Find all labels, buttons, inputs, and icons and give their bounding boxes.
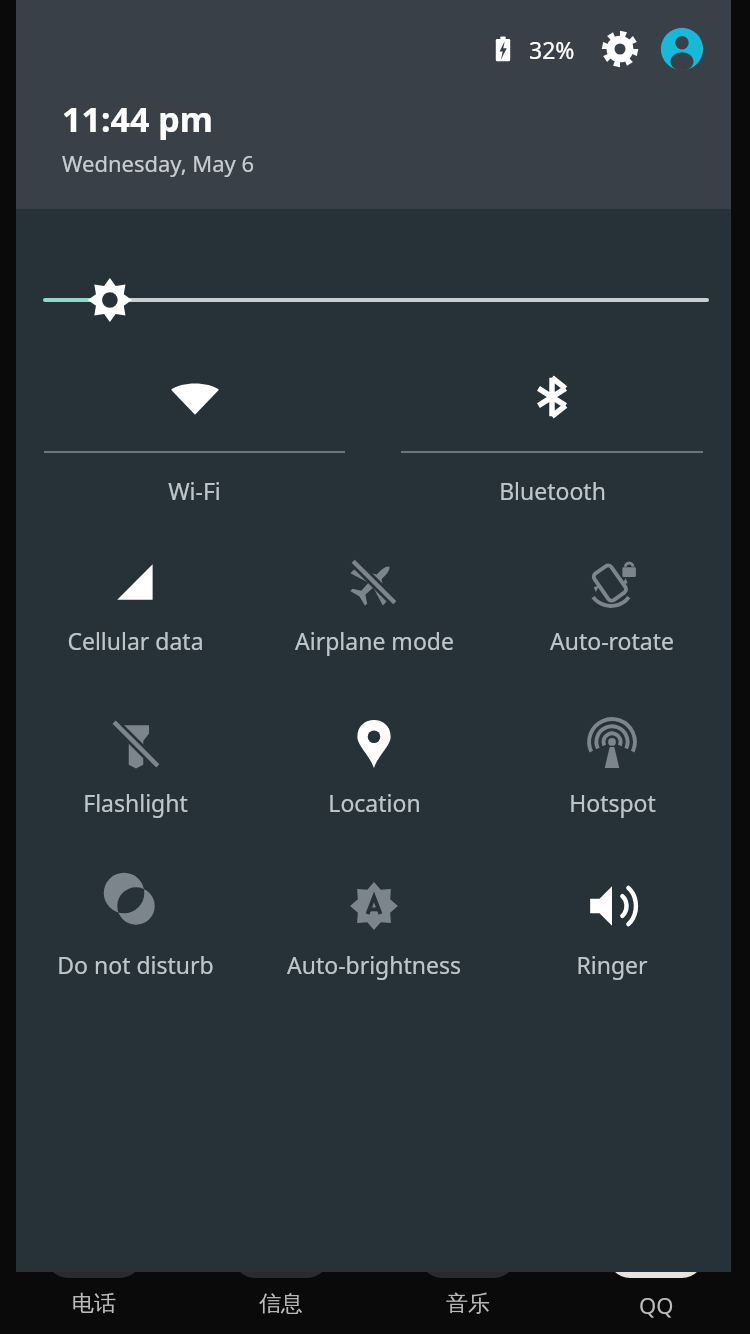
staticText: Ringer	[576, 949, 648, 980]
staticText: QQ	[639, 1290, 674, 1320]
button[interactable]: Hotspot	[493, 713, 731, 818]
other: Battery charging	[485, 31, 521, 67]
staticText: 电话	[72, 1290, 116, 1318]
staticText: Airplane mode	[295, 625, 454, 656]
button[interactable]: Settings	[597, 26, 643, 72]
button[interactable]: Do not disturb	[16, 875, 255, 980]
staticText: Location	[328, 787, 421, 818]
button[interactable]: Flashlight	[16, 713, 255, 818]
button[interactable]: 电话	[0, 1254, 187, 1318]
button[interactable]: Wi-Fi	[16, 366, 373, 506]
staticText: 音乐	[446, 1290, 490, 1318]
button[interactable]: Auto-rotate	[493, 551, 731, 656]
staticText: Wi-Fi	[168, 475, 221, 506]
staticText: 信息	[259, 1290, 303, 1318]
staticText: Auto-rotate	[550, 625, 674, 656]
staticText: 11:44 pm	[62, 96, 213, 142]
button[interactable]: Brightness	[16, 272, 731, 328]
button[interactable]: User account	[659, 26, 705, 72]
button[interactable]: 音乐	[374, 1254, 562, 1318]
staticText: 32%	[529, 34, 575, 65]
staticText: Wednesday, May 6	[62, 148, 255, 178]
button[interactable]: Airplane mode	[255, 551, 493, 656]
staticText: Flashlight	[83, 787, 188, 818]
staticText: Cellular data	[67, 625, 204, 656]
button[interactable]: Location	[255, 713, 493, 818]
button[interactable]: Auto-brightness	[255, 875, 493, 980]
button[interactable]: Cellular data	[16, 551, 255, 656]
staticText: Hotspot	[569, 787, 656, 818]
staticText: Auto-brightness	[287, 949, 461, 980]
button[interactable]: 信息	[187, 1254, 374, 1318]
button[interactable]: Ringer	[493, 875, 731, 980]
button[interactable]: QQ	[562, 1254, 750, 1320]
staticText: Bluetooth	[499, 475, 606, 506]
button[interactable]: Bluetooth	[373, 366, 731, 506]
staticText: Do not disturb	[57, 949, 214, 980]
